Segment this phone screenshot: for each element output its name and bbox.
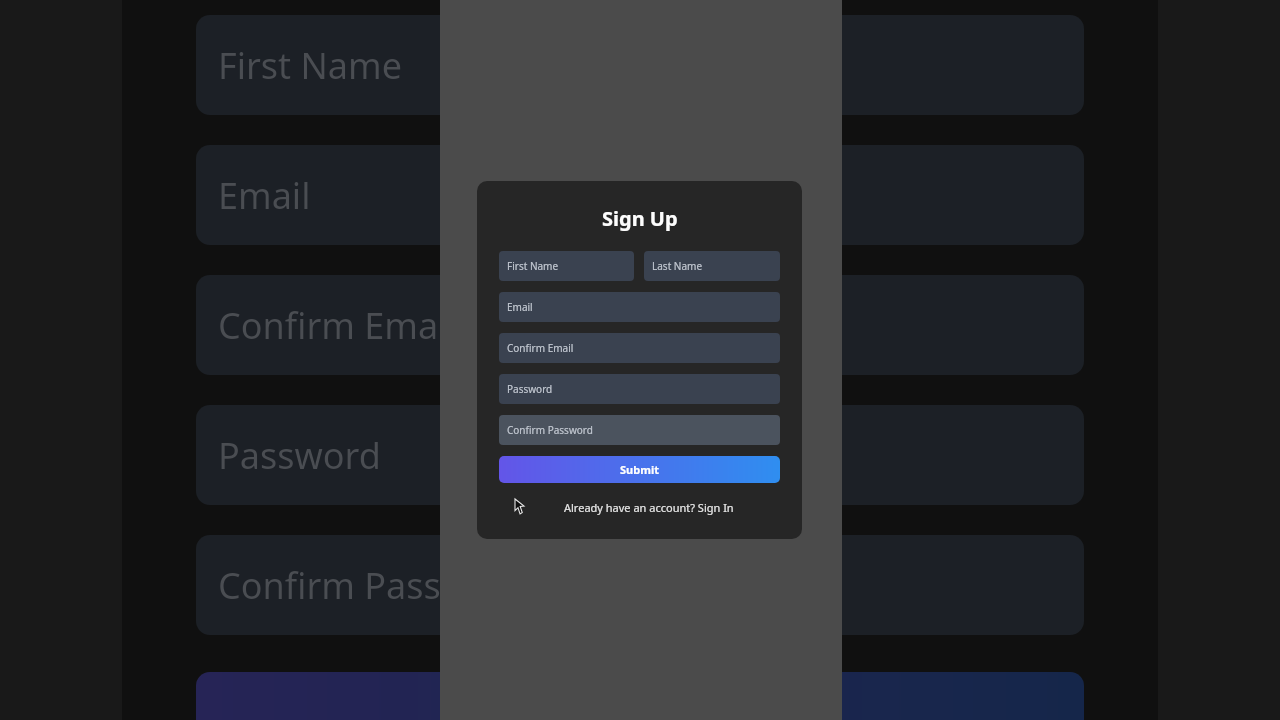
button[interactable]: Password bbox=[499, 374, 780, 404]
staticText: Email bbox=[218, 171, 311, 220]
button[interactable]: Confirm Email bbox=[499, 333, 780, 363]
button[interactable]: Last Name bbox=[644, 251, 780, 281]
staticText: Last Name bbox=[652, 259, 703, 273]
staticText: Email bbox=[507, 300, 533, 314]
button[interactable]: Confirm Password bbox=[499, 415, 780, 445]
staticText: Sign Up bbox=[602, 205, 678, 232]
staticText: First Name bbox=[218, 41, 402, 90]
staticText: Confirm Email bbox=[507, 341, 574, 355]
button[interactable]: Submit bbox=[499, 456, 780, 483]
staticText: Already have an account? Sign In bbox=[564, 500, 734, 515]
staticText: Confirm Passw bbox=[218, 561, 470, 610]
staticText: Submit bbox=[620, 462, 659, 477]
button[interactable]: First Name bbox=[499, 251, 634, 281]
button[interactable]: Email bbox=[499, 292, 780, 322]
other: Pointer bbox=[515, 499, 526, 514]
staticText: Password bbox=[507, 382, 553, 396]
staticText: Confirm Email bbox=[218, 301, 457, 350]
staticText: First Name bbox=[507, 259, 559, 273]
button[interactable]: Already have an account? Sign In bbox=[477, 497, 802, 517]
staticText: Confirm Password bbox=[507, 423, 593, 437]
staticText: Password bbox=[218, 431, 381, 480]
